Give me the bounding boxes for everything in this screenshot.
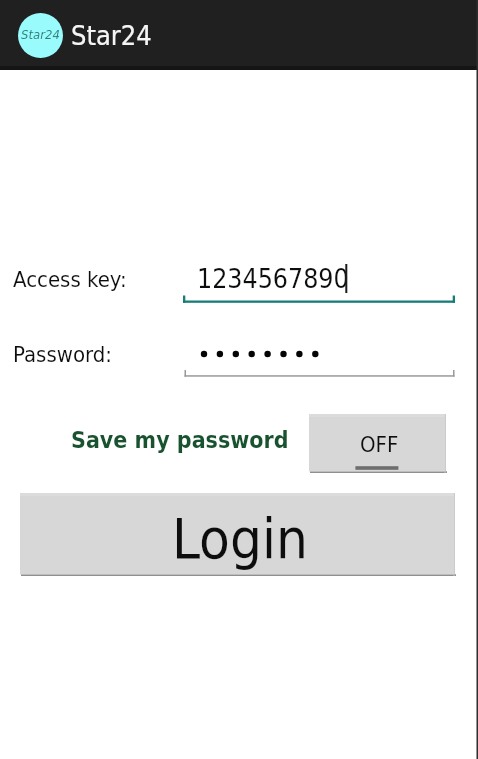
staticText: Password: [13,342,112,368]
button[interactable]: Login [20,493,456,577]
staticText: 1234567890 [197,263,349,294]
button[interactable]: Star24 logo [0,0,478,70]
staticText: Star24 [21,27,60,42]
staticText: OFF [360,432,399,458]
button[interactable]: 1234567890 [183,255,457,306]
staticText: Login [172,506,308,571]
staticText: Save my password [71,427,289,454]
button[interactable] [184,344,456,379]
other: Star24 logo [18,13,63,58]
staticText: Star24 [71,20,152,51]
button[interactable]: OFF [309,414,447,474]
staticText: Access key: [13,267,127,293]
